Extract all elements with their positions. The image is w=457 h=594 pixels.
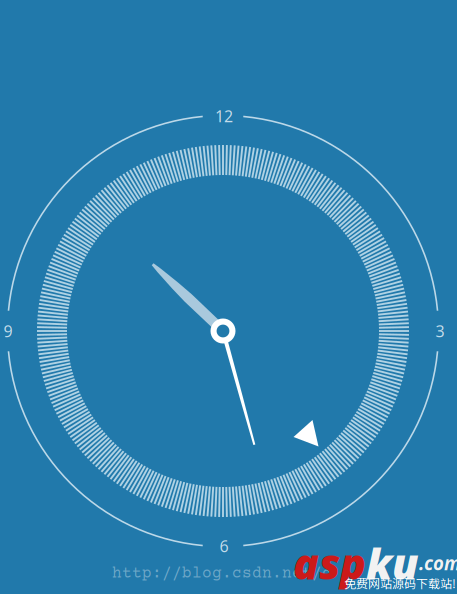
staticText: ku [366, 535, 419, 591]
staticText: 3 [435, 320, 444, 342]
staticText: http://blog.csdn.net/d [112, 565, 332, 583]
staticText: 9 [3, 320, 12, 342]
staticText: 6 [219, 535, 228, 557]
staticText: 12 [215, 105, 233, 127]
staticText: asp [293, 535, 366, 591]
staticText: .com [419, 551, 457, 575]
staticText: 免费网站源码下载站! [344, 574, 456, 592]
